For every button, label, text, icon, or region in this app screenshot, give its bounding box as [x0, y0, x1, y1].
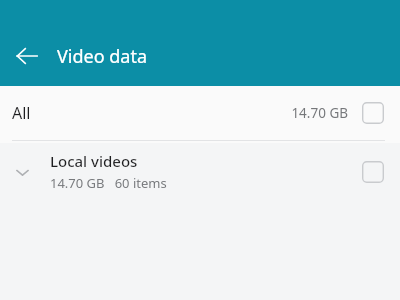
- staticText: Video data: [57, 44, 147, 69]
- staticText: All: [12, 102, 31, 124]
- staticText: 14.70 GB 60 items: [50, 174, 167, 192]
- button[interactable]: Collapse: [0, 150, 44, 194]
- staticText: Local videos: [50, 151, 138, 171]
- button[interactable]: Back: [10, 39, 44, 73]
- button[interactable]: Select: [360, 100, 386, 126]
- staticText: 14.70 GB: [291, 104, 348, 122]
- button[interactable]: Select: [360, 159, 386, 185]
- button[interactable]: Collapse: [0, 143, 400, 200]
- button[interactable]: All: [0, 86, 400, 140]
